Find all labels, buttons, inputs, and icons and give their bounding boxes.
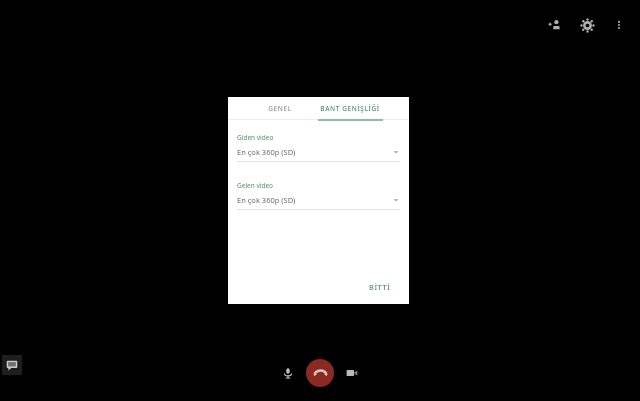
staticText: Gelen video — [237, 181, 274, 190]
staticText: Giden video — [237, 133, 274, 142]
staticText: BİTTİ — [369, 282, 391, 292]
button[interactable]: End call — [306, 359, 334, 387]
button[interactable]: BİTTİ — [363, 278, 397, 296]
button[interactable]: Mute microphone — [274, 359, 302, 387]
button[interactable]: Chat — [2, 355, 22, 375]
button[interactable]: En çok 360p (SD) — [237, 147, 400, 157]
button[interactable]: More options — [606, 12, 632, 38]
staticText: GENEL — [268, 104, 292, 113]
button[interactable]: BANT GENİŞLİĞİ — [311, 97, 389, 119]
button[interactable]: Settings — [574, 12, 600, 38]
button[interactable]: Add person — [542, 12, 568, 38]
button[interactable]: Turn off camera — [338, 359, 366, 387]
staticText: BANT GENİŞLİĞİ — [320, 104, 380, 113]
staticText: En çok 360p (SD) — [237, 147, 296, 157]
button[interactable]: En çok 360p (SD) — [237, 195, 400, 205]
button[interactable]: GENEL — [249, 97, 311, 119]
staticText: En çok 360p (SD) — [237, 195, 296, 205]
